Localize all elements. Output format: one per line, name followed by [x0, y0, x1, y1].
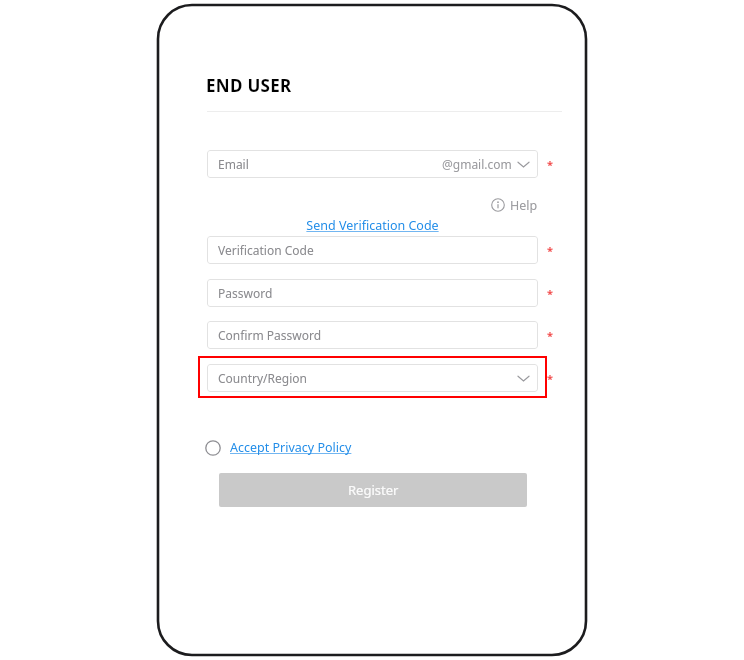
staticText: Country/Region	[218, 370, 307, 386]
button[interactable]: Password	[207, 279, 538, 307]
staticText: Password	[218, 285, 273, 301]
staticText: Register	[348, 481, 399, 499]
button[interactable]: Verification Code	[207, 236, 538, 264]
staticText: Help	[510, 197, 538, 214]
button[interactable]: Help	[491, 194, 538, 216]
button[interactable]: Register	[219, 473, 527, 507]
staticText: Verification Code	[218, 242, 314, 258]
staticText: Confirm Password	[218, 327, 322, 343]
staticText: END USER	[206, 74, 292, 97]
staticText: *	[547, 328, 553, 343]
button[interactable]: Email	[207, 150, 538, 178]
staticText: *	[547, 243, 553, 258]
button[interactable]: Confirm Password	[207, 321, 538, 349]
button[interactable]: Accept Privacy Policy	[205, 437, 352, 458]
button[interactable]: Send Verification Code	[207, 216, 538, 234]
staticText: @gmail.com	[442, 156, 512, 172]
staticText: Email	[218, 156, 249, 172]
button[interactable]: Country/Region	[207, 364, 538, 392]
staticText: Accept Privacy Policy	[230, 439, 352, 456]
staticText: *	[547, 157, 553, 172]
staticText: Send Verification Code	[306, 217, 439, 234]
staticText: *	[547, 371, 553, 386]
staticText: *	[547, 286, 553, 301]
